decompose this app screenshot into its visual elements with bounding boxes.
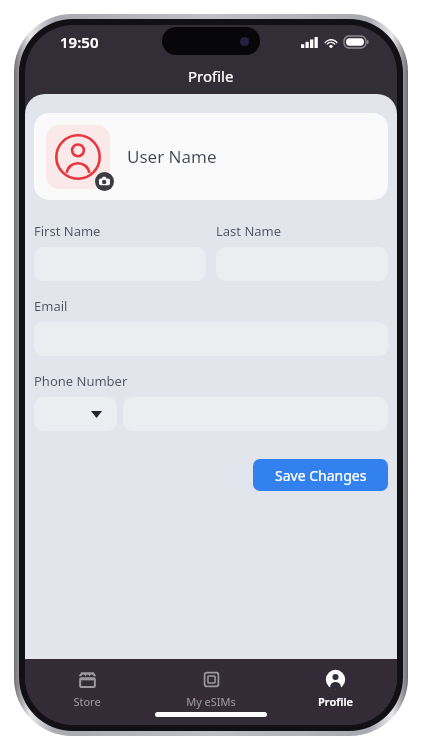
staticText: Last Name [216,222,282,240]
staticText: Save Changes [275,466,367,485]
staticText: 19:50 [60,32,99,52]
staticText: Phone Number [34,372,128,390]
button[interactable]: Store [25,665,149,713]
button[interactable]: Profile photo [34,113,388,200]
staticText: Store [73,694,101,709]
button[interactable]: Save Changes [253,459,388,491]
staticText: Email [34,297,68,315]
button[interactable]: Profile [273,665,397,713]
staticText: Profile [318,694,353,709]
button[interactable]: My eSIMs [149,665,273,713]
staticText: Profile [188,66,234,86]
button[interactable]: Change photo [95,172,114,191]
staticText: My eSIMs [186,694,236,709]
button[interactable]: Country code [34,397,117,431]
button[interactable]: Profile photo [46,125,110,189]
staticText: User Name [127,145,217,168]
staticText: First Name [34,222,101,240]
